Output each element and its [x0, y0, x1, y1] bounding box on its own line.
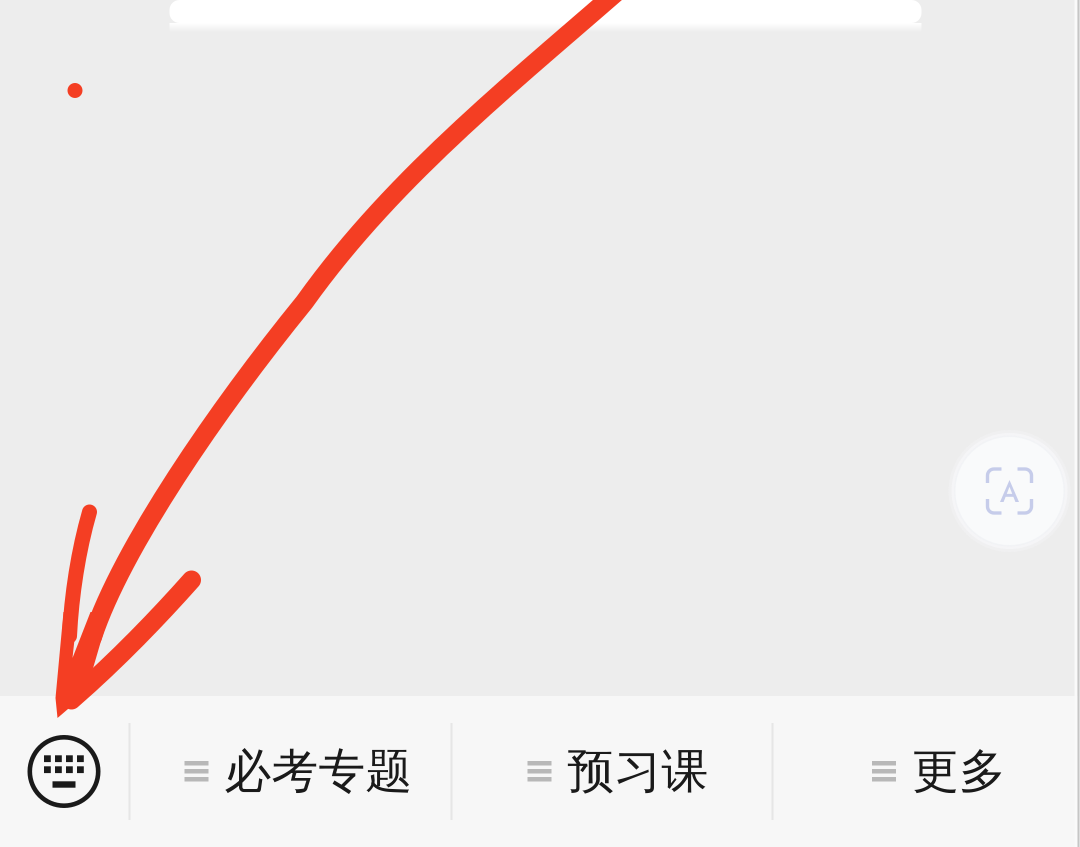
staticText: 更多 [912, 743, 1006, 800]
button[interactable]: AI scan [947, 429, 1071, 553]
button[interactable]: Keyboard [0, 696, 128, 847]
staticText: 必考专题 [224, 743, 412, 800]
staticText: 预习课 [567, 743, 708, 800]
button[interactable]: 必考专题 [130, 696, 450, 847]
button[interactable]: 预习课 [452, 696, 771, 847]
button[interactable]: 更多 [773, 696, 1080, 847]
